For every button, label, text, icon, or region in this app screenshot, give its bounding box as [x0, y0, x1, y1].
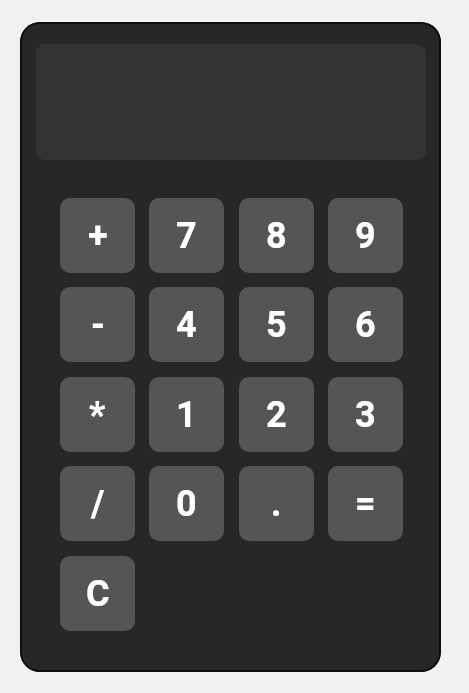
staticText: / — [91, 483, 105, 525]
button[interactable]: 8 — [239, 198, 314, 273]
button[interactable]: 6 — [328, 287, 403, 362]
staticText: 3 — [355, 394, 376, 436]
button[interactable]: 7 — [149, 198, 224, 273]
button[interactable]: * — [60, 377, 135, 452]
staticText: 1 — [176, 394, 197, 436]
button[interactable]: / — [60, 466, 135, 541]
button[interactable]: 2 — [239, 377, 314, 452]
staticText: - — [91, 304, 105, 346]
staticText: 2 — [266, 394, 287, 436]
staticText: 7 — [176, 215, 197, 257]
staticText: 5 — [266, 304, 287, 346]
staticText: = — [355, 483, 376, 525]
staticText: . — [271, 483, 282, 525]
button[interactable]: C — [60, 556, 135, 631]
button[interactable]: 3 — [328, 377, 403, 452]
staticText: * — [89, 394, 106, 436]
staticText: 0 — [176, 483, 197, 525]
button[interactable]: . — [239, 466, 314, 541]
button[interactable]: 4 — [149, 287, 224, 362]
button[interactable]: = — [328, 466, 403, 541]
button[interactable]: 5 — [239, 287, 314, 362]
button[interactable]: + — [60, 198, 135, 273]
staticText: + — [88, 215, 108, 257]
button[interactable]: 1 — [149, 377, 224, 452]
staticText: 8 — [266, 215, 287, 257]
button[interactable]: 9 — [328, 198, 403, 273]
staticText: 9 — [355, 215, 376, 257]
staticText: 4 — [176, 304, 197, 346]
staticText: C — [86, 573, 110, 615]
staticText: 6 — [355, 304, 376, 346]
button[interactable]: 0 — [149, 466, 224, 541]
button[interactable]: - — [60, 287, 135, 362]
